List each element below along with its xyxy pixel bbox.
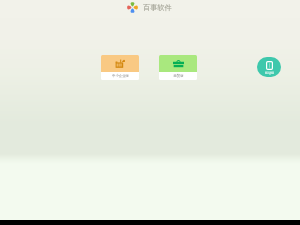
button[interactable]: 中小企业版 [101, 55, 139, 80]
staticText: 商贸版 [173, 74, 184, 78]
button[interactable]: 商贸版 [159, 55, 197, 80]
staticText: 中小企业版 [112, 74, 129, 78]
button[interactable]: 百事软件 [128, 3, 172, 12]
button[interactable]: 移动端 [257, 57, 281, 77]
staticText: 百事软件 [143, 3, 172, 12]
staticText: 移动端 [265, 71, 274, 75]
